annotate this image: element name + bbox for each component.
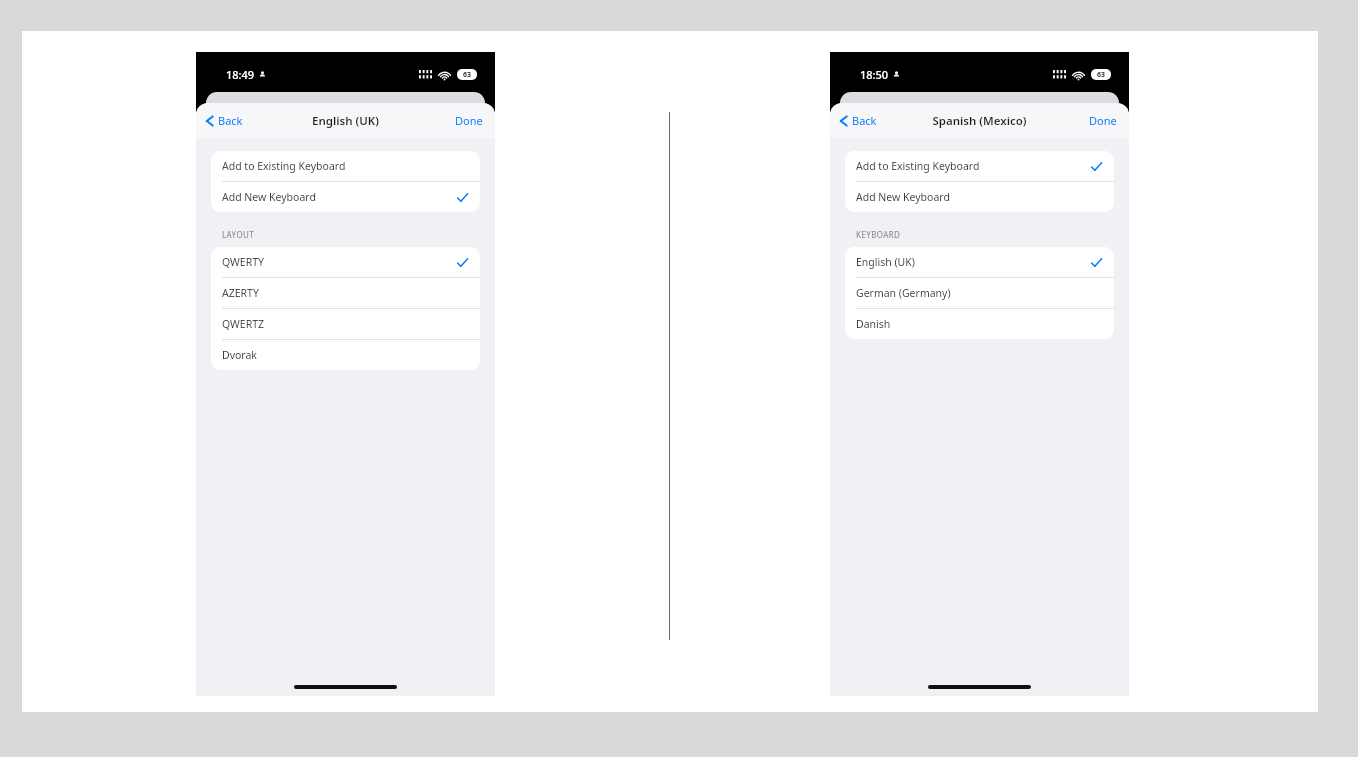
staticText: English (UK) bbox=[312, 113, 379, 129]
staticText: Add New Keyboard bbox=[856, 190, 1102, 204]
staticText: 63 bbox=[1097, 70, 1106, 80]
staticText: Add to Existing Keyboard bbox=[222, 159, 468, 173]
button[interactable]: Add New Keyboard bbox=[845, 182, 1114, 212]
button[interactable]: Back bbox=[830, 109, 885, 132]
button[interactable]: Danish bbox=[845, 309, 1114, 339]
staticText: Done bbox=[455, 113, 483, 128]
button[interactable]: Add New Keyboard bbox=[211, 182, 480, 212]
button[interactable]: German (Germany) bbox=[845, 278, 1114, 308]
staticText: KEYBOARD bbox=[856, 229, 901, 240]
staticText: Done bbox=[1089, 113, 1117, 128]
staticText: Danish bbox=[856, 317, 1102, 331]
staticText: LAYOUT bbox=[222, 229, 255, 240]
button[interactable]: Done bbox=[1077, 109, 1129, 132]
staticText: Spanish (Mexico) bbox=[932, 113, 1027, 129]
staticText: Back bbox=[852, 113, 877, 128]
button[interactable]: Dvorak bbox=[211, 340, 480, 370]
staticText: 63 bbox=[463, 70, 472, 80]
staticText: 18:49 bbox=[226, 67, 255, 82]
button[interactable]: Back bbox=[196, 109, 251, 132]
staticText: Back bbox=[218, 113, 243, 128]
button[interactable]: QWERTZ bbox=[211, 309, 480, 339]
button[interactable]: Add to Existing Keyboard bbox=[211, 151, 480, 181]
staticText: Add New Keyboard bbox=[222, 190, 457, 204]
staticText: AZERTY bbox=[222, 286, 468, 300]
button[interactable]: Add to Existing Keyboard bbox=[845, 151, 1114, 181]
button[interactable]: AZERTY bbox=[211, 278, 480, 308]
staticText: 18:50 bbox=[860, 67, 889, 82]
button[interactable]: English (UK) bbox=[845, 247, 1114, 277]
button[interactable]: Done bbox=[443, 109, 495, 132]
staticText: QWERTY bbox=[222, 255, 457, 269]
staticText: German (Germany) bbox=[856, 286, 1102, 300]
staticText: Add to Existing Keyboard bbox=[856, 159, 1091, 173]
staticText: Dvorak bbox=[222, 348, 468, 362]
staticText: QWERTZ bbox=[222, 317, 468, 331]
button[interactable]: QWERTY bbox=[211, 247, 480, 277]
staticText: English (UK) bbox=[856, 255, 1091, 269]
